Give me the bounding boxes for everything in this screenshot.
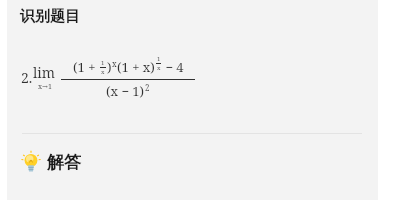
staticText: 识别题目 <box>20 7 80 26</box>
button[interactable]: 2. <box>7 55 203 100</box>
staticText: x <box>112 58 117 69</box>
staticText: 2. <box>21 68 33 87</box>
staticText: 1 <box>101 59 105 67</box>
button[interactable]: Answer hint <box>7 150 91 175</box>
staticText: x <box>157 64 161 72</box>
staticText: x <box>101 68 105 76</box>
staticText: ) <box>107 58 112 76</box>
staticText: (1 + <box>73 58 99 76</box>
staticText: x→1 <box>38 82 52 92</box>
button[interactable]: 识别题目 <box>7 5 378 28</box>
staticText: lim <box>33 63 56 82</box>
staticText: 1 <box>157 55 161 63</box>
staticText: (x − 1) <box>106 82 145 100</box>
staticText: 解答 <box>47 152 81 173</box>
other: Answer hint <box>21 153 41 173</box>
staticText: 2 <box>145 82 150 93</box>
staticText: (1 + x) <box>117 58 155 76</box>
staticText: − 4 <box>162 58 184 76</box>
